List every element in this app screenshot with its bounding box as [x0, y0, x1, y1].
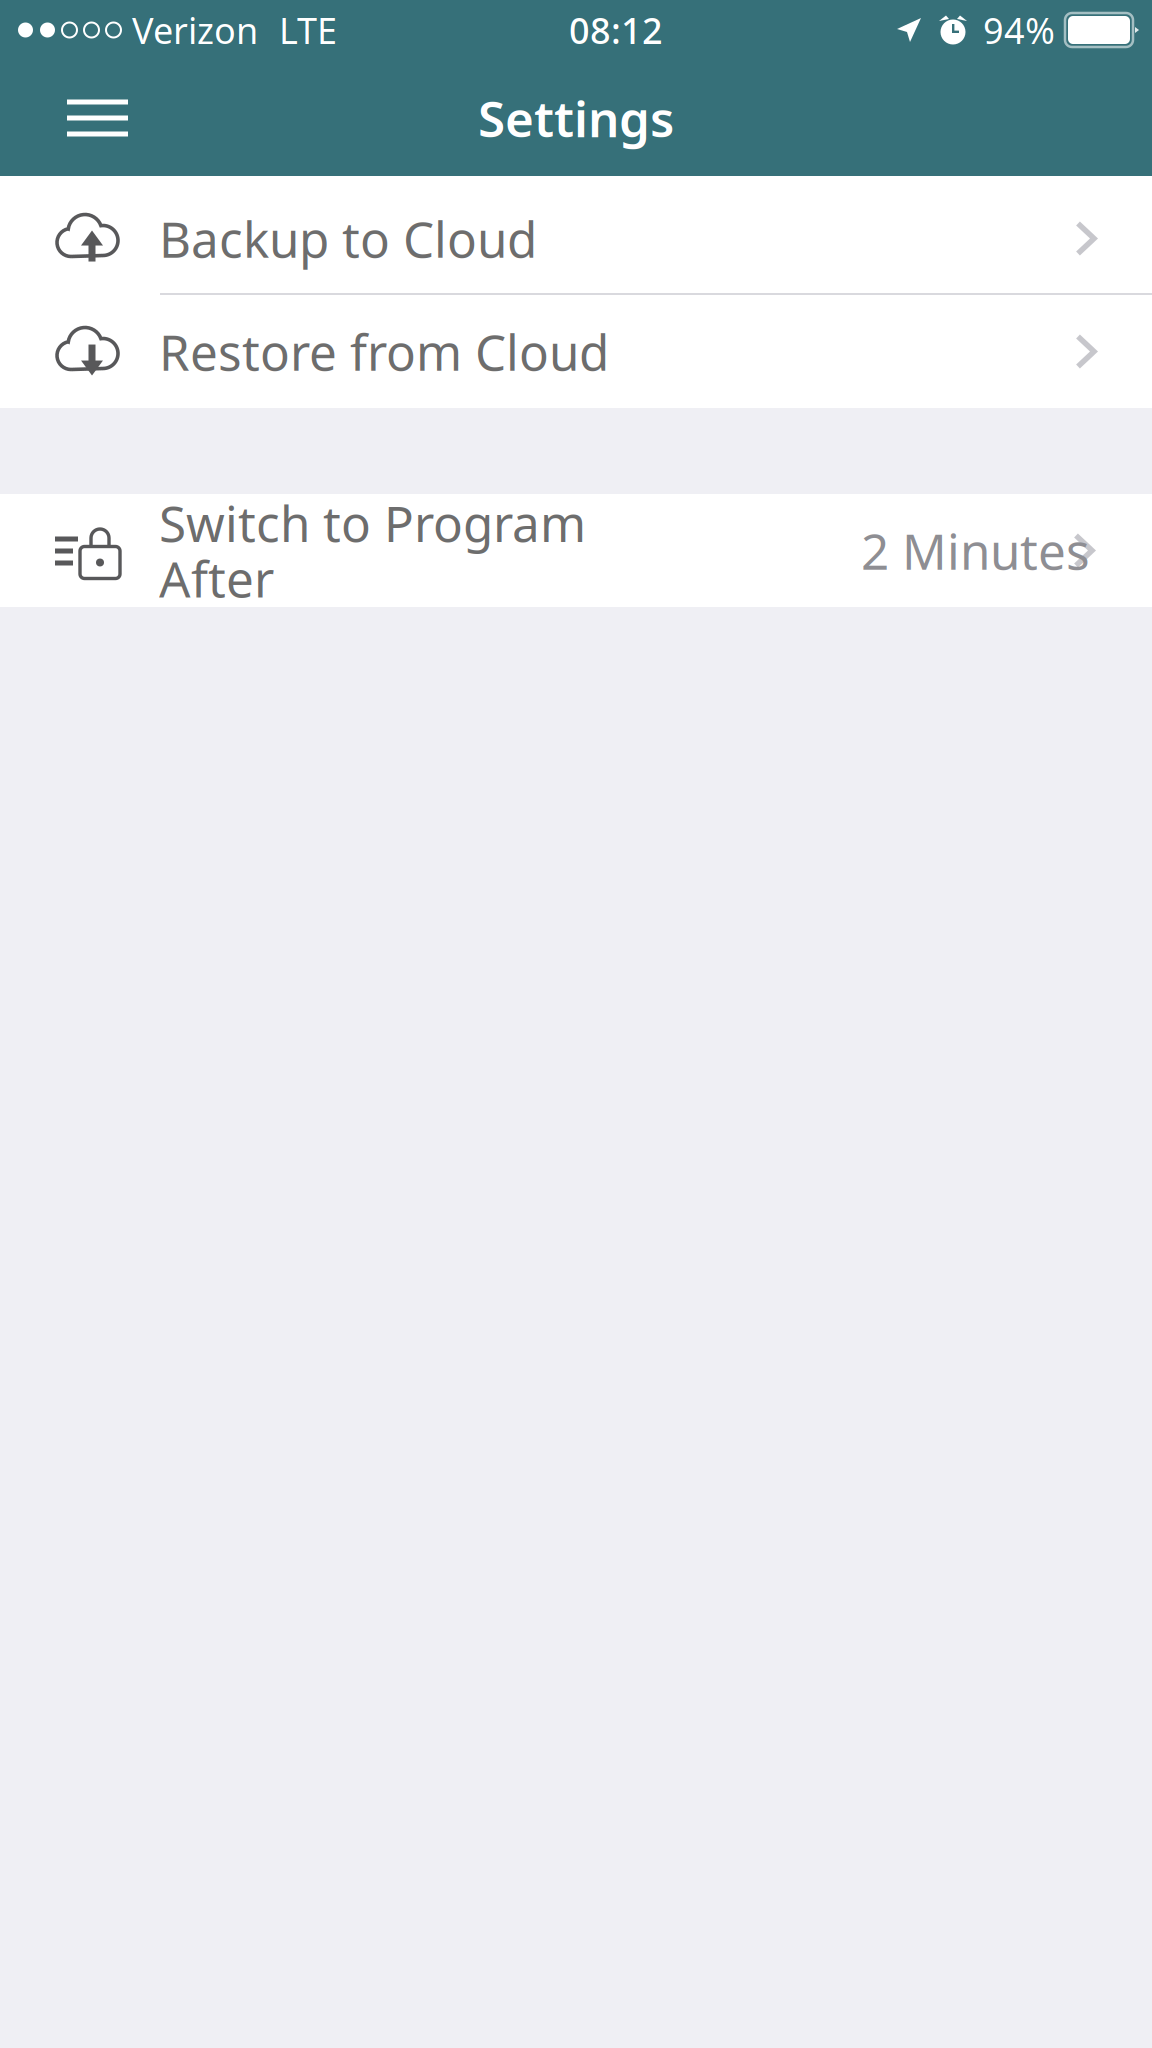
button[interactable]: Restore from Cloud [0, 295, 1152, 408]
staticText: Backup to Cloud [159, 206, 537, 271]
staticText: LTE [279, 6, 337, 54]
staticText: Restore from Cloud [159, 319, 609, 384]
staticText: After [159, 545, 274, 611]
button[interactable]: Backup to Cloud [0, 176, 1152, 293]
staticText: 2 Minutes [861, 518, 1090, 583]
staticText: Settings [478, 85, 674, 151]
button[interactable]: Switch to Program [0, 494, 1152, 607]
staticText: Switch to Program [159, 490, 586, 555]
staticText: 08:12 [569, 6, 663, 54]
staticText: Verizon [132, 6, 258, 54]
staticText: 94% [983, 6, 1055, 54]
button[interactable]: Menu [0, 69, 168, 166]
